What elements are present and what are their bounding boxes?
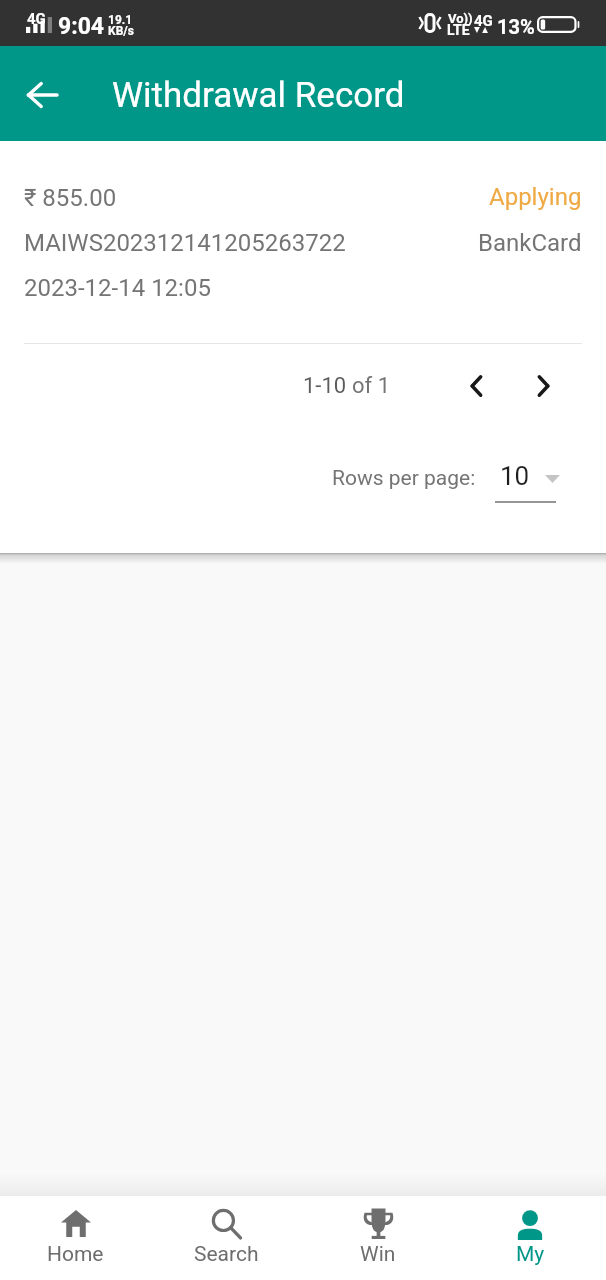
button[interactable]: Search — [151, 1196, 302, 1280]
staticText: Vo)) — [448, 11, 473, 26]
staticText: Rows per page: — [332, 466, 476, 491]
button[interactable]: Home — [0, 1196, 151, 1280]
staticText: Search — [194, 1242, 259, 1267]
staticText: Home — [47, 1242, 104, 1267]
staticText: Withdrawal Record — [112, 75, 405, 116]
staticText: My — [516, 1242, 545, 1267]
staticText: ₹ 855.00 — [24, 184, 117, 212]
staticText: BankCard — [478, 229, 582, 257]
staticText: LTE — [447, 22, 470, 38]
staticText: MAIWS202312141205263722 — [24, 229, 346, 257]
staticText: KB/s — [108, 24, 134, 38]
staticText: Applying — [489, 183, 582, 211]
button[interactable]: 10 — [495, 461, 556, 503]
staticText: 10 — [500, 461, 530, 491]
button[interactable]: My — [454, 1196, 606, 1280]
button[interactable]: Back — [12, 65, 72, 125]
staticText: of 1 — [352, 373, 391, 399]
staticText: 19.1 — [108, 13, 133, 27]
staticText: 4G — [474, 12, 493, 30]
staticText: 2023-12-14 12:05 — [24, 274, 211, 302]
staticText: 13% — [497, 15, 535, 38]
staticText: 9:04 — [58, 13, 105, 40]
staticText: 4G — [27, 10, 46, 28]
staticText: Win — [360, 1242, 396, 1267]
button[interactable]: Win — [302, 1196, 454, 1280]
button[interactable]: Next page — [522, 365, 564, 407]
button[interactable]: Previous page — [456, 365, 498, 407]
staticText: 1-10 — [303, 373, 352, 399]
